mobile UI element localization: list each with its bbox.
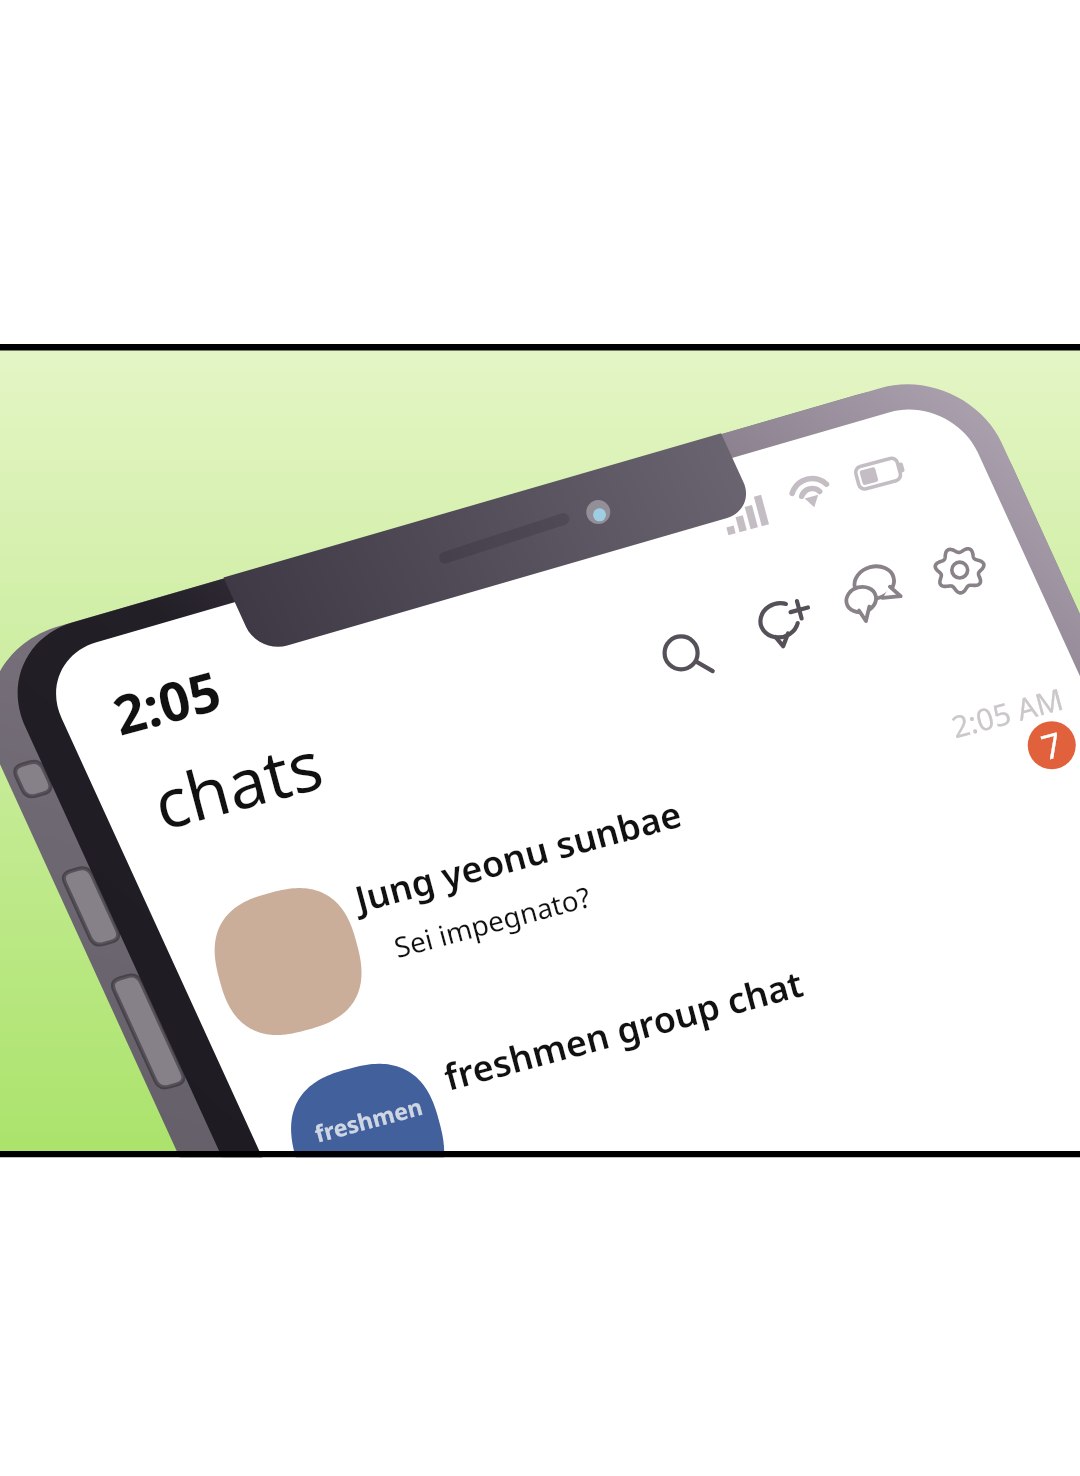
button[interactable]: Search <box>653 624 709 680</box>
button[interactable]: Messages <box>836 560 898 622</box>
button[interactable]: New chat <box>748 589 810 651</box>
button[interactable] <box>291 801 911 951</box>
button[interactable] <box>370 974 990 1124</box>
button[interactable]: Search <box>0 0 1080 1476</box>
button[interactable]: Settings <box>929 540 989 600</box>
